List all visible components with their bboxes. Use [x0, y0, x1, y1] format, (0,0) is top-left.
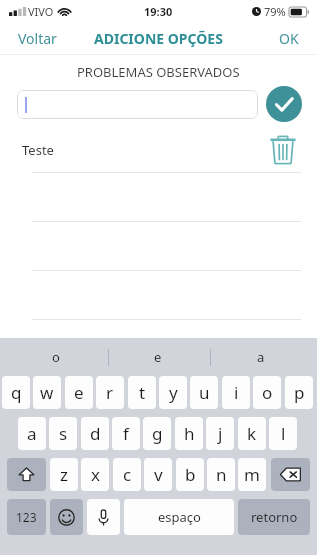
button[interactable]: o	[253, 376, 281, 409]
staticText: k	[247, 422, 257, 445]
button[interactable]: a	[231, 338, 291, 376]
button[interactable]: e	[65, 376, 93, 409]
button[interactable]: Ditado por voz	[87, 499, 120, 535]
staticText: u	[199, 381, 210, 404]
staticText: espaço	[158, 508, 201, 526]
button[interactable]: espaço	[124, 499, 234, 535]
staticText: b	[185, 463, 196, 486]
staticText: h	[184, 422, 195, 445]
staticText: retorno	[251, 508, 298, 526]
staticText: a	[27, 422, 37, 445]
staticText: m	[244, 463, 260, 486]
staticText: Teste	[22, 141, 54, 159]
staticText: t	[139, 381, 146, 404]
button[interactable]: g	[143, 417, 171, 450]
button[interactable]: a	[18, 417, 46, 450]
staticText: n	[216, 463, 227, 486]
staticText: j	[218, 422, 223, 445]
button[interactable]: d	[81, 417, 109, 450]
staticText: VIVO	[28, 4, 54, 19]
button[interactable]: m	[238, 458, 266, 491]
staticText: a	[257, 348, 265, 366]
staticText: d	[90, 422, 101, 445]
button[interactable]: r	[96, 376, 124, 409]
button[interactable]: Confirmar	[266, 86, 302, 122]
button[interactable]: w	[33, 376, 61, 409]
staticText: v	[154, 463, 163, 486]
button[interactable]: t	[128, 376, 156, 409]
button[interactable]: n	[207, 458, 235, 491]
staticText: p	[294, 381, 305, 404]
staticText: PROBLEMAS OBSERVADOS	[77, 63, 240, 81]
button[interactable]: Voltar	[0, 25, 67, 52]
staticText: q	[11, 381, 22, 404]
staticText: o	[262, 381, 273, 404]
staticText: y	[169, 381, 178, 404]
staticText: c	[123, 463, 132, 486]
staticText: g	[152, 422, 163, 445]
staticText: i	[234, 381, 239, 404]
button[interactable]: j	[206, 417, 234, 450]
staticText: w	[40, 381, 54, 404]
button[interactable]: Shift	[7, 458, 46, 491]
button[interactable]: o	[26, 338, 86, 376]
button[interactable]: Apagar	[271, 458, 310, 491]
staticText: o	[52, 348, 60, 366]
staticText: r	[106, 381, 114, 404]
button[interactable]: v	[144, 458, 172, 491]
button[interactable]: e	[128, 338, 188, 376]
button[interactable]: z	[50, 458, 78, 491]
button[interactable]: q	[2, 376, 30, 409]
button[interactable]: 123	[7, 499, 46, 535]
staticText: l	[281, 422, 286, 445]
button[interactable]: i	[222, 376, 250, 409]
button[interactable]: x	[81, 458, 109, 491]
button[interactable]: retorno	[238, 499, 310, 535]
button[interactable]: c	[113, 458, 141, 491]
staticText: Voltar	[18, 29, 57, 48]
button[interactable]: s	[49, 417, 77, 450]
staticText: ADICIONE OPÇÕES	[94, 29, 223, 48]
button[interactable]: k	[238, 417, 266, 450]
button[interactable]: u	[190, 376, 218, 409]
staticText: x	[91, 463, 100, 486]
staticText: e	[74, 381, 84, 404]
button[interactable]: Emoji	[50, 499, 83, 535]
button[interactable]: l	[269, 417, 297, 450]
staticText: f	[123, 422, 129, 445]
button[interactable]	[17, 90, 258, 119]
staticText: 19:30	[144, 4, 173, 19]
staticText: z	[60, 463, 68, 486]
button[interactable]: f	[112, 417, 140, 450]
staticText: e	[154, 348, 162, 366]
button[interactable]: h	[175, 417, 203, 450]
staticText: 79%	[264, 4, 286, 19]
staticText: s	[59, 422, 68, 445]
button[interactable]: p	[285, 376, 313, 409]
button[interactable]: OK	[269, 25, 317, 52]
button[interactable]: Excluir	[268, 133, 298, 167]
staticText: 123	[16, 509, 37, 525]
button[interactable]: y	[159, 376, 187, 409]
staticText: OK	[279, 29, 299, 48]
button[interactable]: b	[176, 458, 204, 491]
